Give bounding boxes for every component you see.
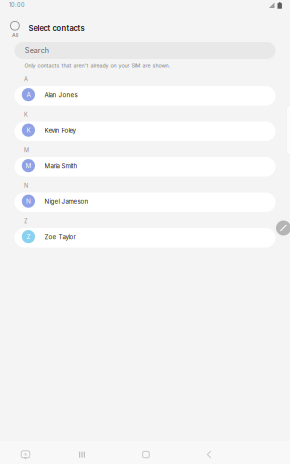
- staticText: Z: [24, 218, 28, 225]
- staticText: N: [26, 197, 31, 205]
- button[interactable]: Z: [14, 228, 275, 247]
- button[interactable]: Recent apps: [79, 452, 85, 458]
- button[interactable]: N: [14, 192, 275, 212]
- staticText: Zoe Taylor: [44, 233, 75, 241]
- button[interactable]: Back: [207, 450, 211, 458]
- button[interactable]: M: [14, 157, 275, 176]
- staticText: Select contacts: [28, 24, 84, 33]
- staticText: Search: [25, 46, 49, 55]
- staticText: Alan Jones: [44, 91, 77, 99]
- staticText: Nigel Jameson: [44, 198, 88, 205]
- button[interactable]: K: [14, 121, 275, 141]
- staticText: K: [26, 126, 30, 134]
- staticText: Only contacts that aren't already on you…: [24, 62, 170, 69]
- button[interactable]: Home: [143, 451, 149, 458]
- staticText: 10:00: [9, 2, 25, 8]
- staticText: K: [24, 111, 28, 118]
- staticText: M: [24, 147, 29, 154]
- staticText: Maria Smith: [44, 162, 77, 170]
- staticText: A: [26, 91, 30, 98]
- staticText: Z: [26, 233, 30, 240]
- button[interactable]: A: [14, 86, 275, 105]
- staticText: M: [25, 162, 31, 169]
- button[interactable]: Edit contact index: [276, 220, 290, 235]
- button[interactable]: Hide keyboard: [21, 450, 30, 459]
- staticText: A: [24, 76, 28, 83]
- button[interactable]: Select all: [5, 22, 25, 46]
- staticText: Kevin Foley: [44, 127, 75, 134]
- button[interactable]: Search: [14, 42, 275, 59]
- staticText: All: [12, 32, 18, 38]
- staticText: N: [24, 182, 28, 189]
